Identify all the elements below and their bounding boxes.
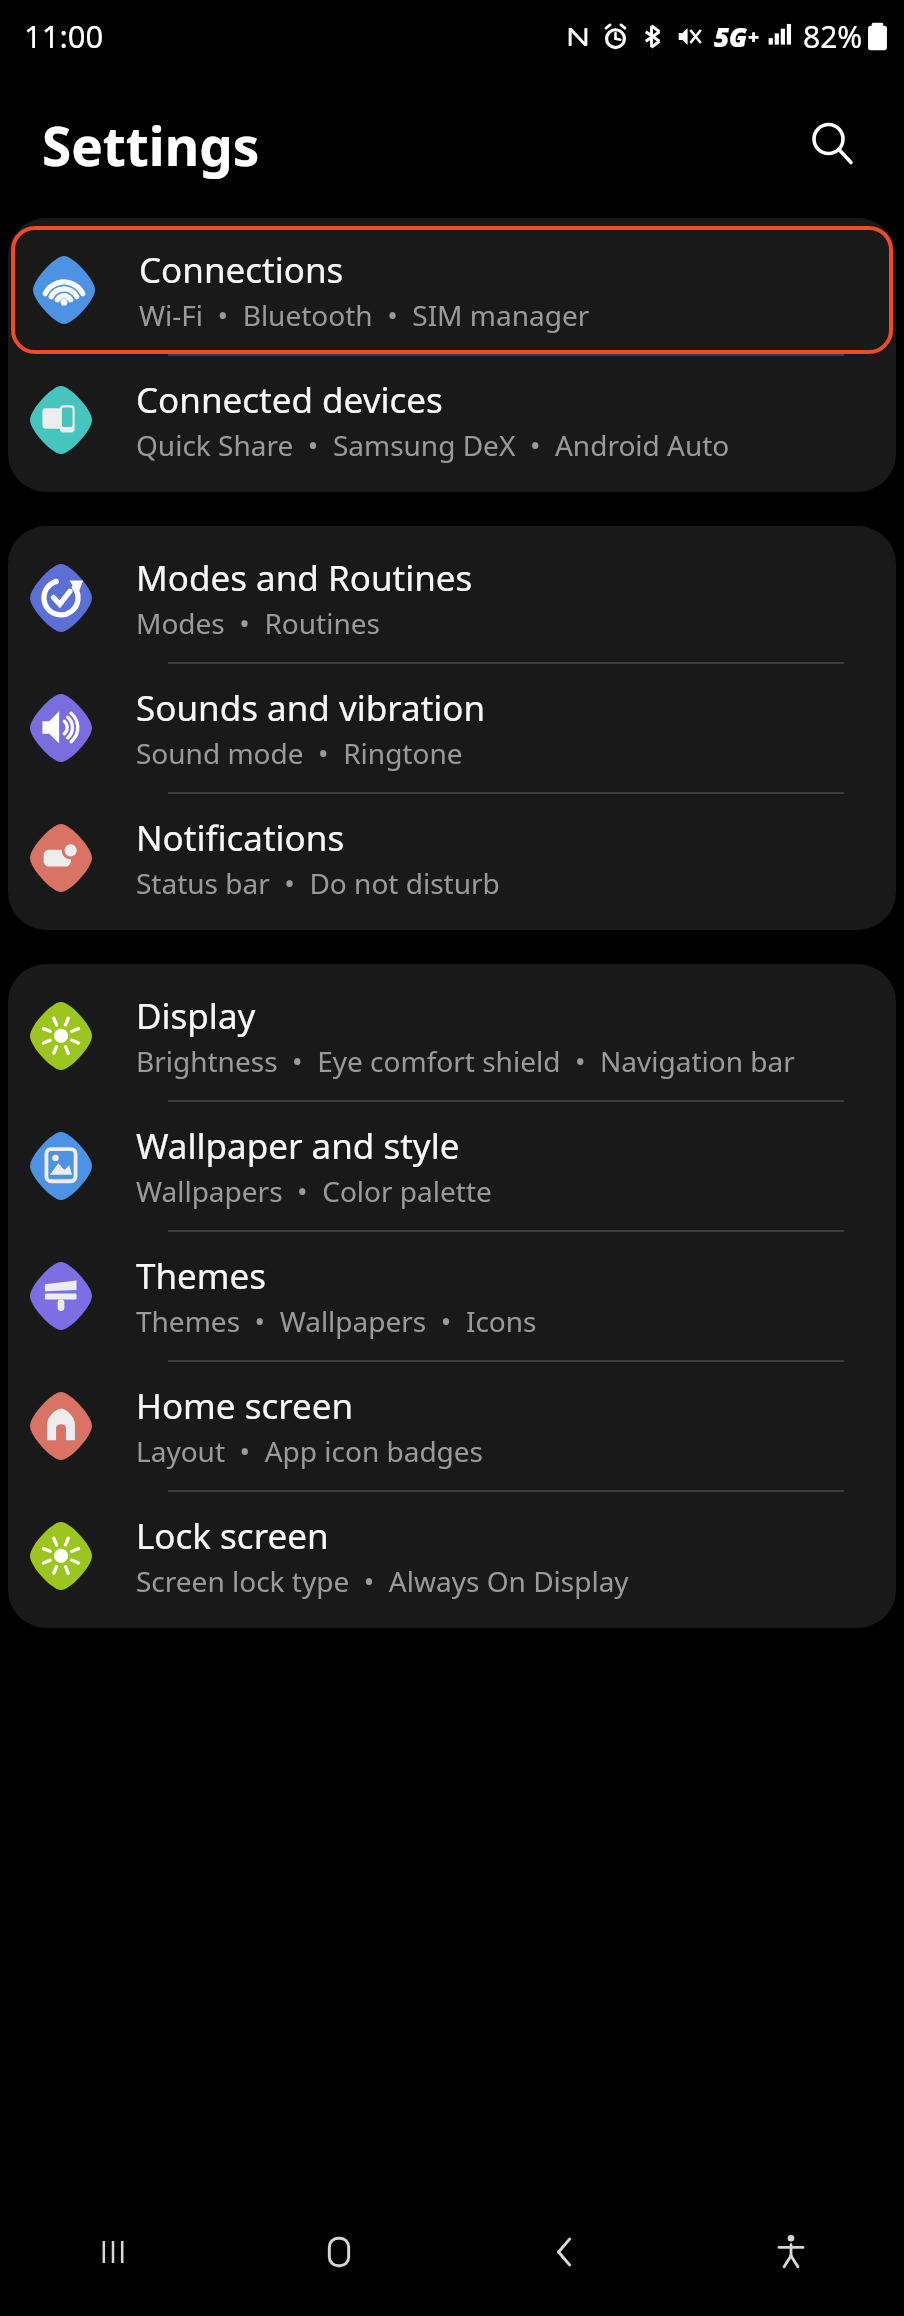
- staticText: Lock screen: [136, 1512, 329, 1560]
- staticText: Modes and Routines: [136, 554, 473, 602]
- staticText: Display: [136, 992, 256, 1040]
- staticText: Home screen: [136, 1382, 354, 1430]
- button[interactable]: Lock screen: [8, 1492, 896, 1620]
- staticText: Sounds and vibration: [136, 684, 486, 732]
- staticText: Notifications: [136, 814, 345, 862]
- staticText: 11:00: [24, 15, 104, 57]
- button[interactable]: Display: [8, 972, 896, 1100]
- staticText: 5G: [714, 19, 748, 54]
- button[interactable]: Sounds and vibration: [8, 664, 896, 792]
- button[interactable]: Connected devices: [8, 356, 896, 484]
- staticText: Wallpapers • Color palette: [136, 1172, 492, 1210]
- button[interactable]: Home: [226, 2188, 452, 2316]
- staticText: Wi-Fi • Bluetooth • SIM manager: [139, 296, 590, 334]
- button[interactable]: Notifications: [8, 794, 896, 922]
- button[interactable]: Accessibility: [678, 2188, 904, 2316]
- staticText: Screen lock type • Always On Display: [136, 1562, 629, 1600]
- staticText: Layout • App icon badges: [136, 1432, 484, 1470]
- staticText: 82%: [803, 16, 863, 57]
- staticText: Status bar • Do not disturb: [136, 864, 500, 902]
- button[interactable]: Home screen: [8, 1362, 896, 1490]
- staticText: Quick Share • Samsung DeX • Android Auto: [136, 426, 730, 464]
- staticText: Connected devices: [136, 376, 443, 424]
- button[interactable]: Recent apps: [0, 2188, 226, 2316]
- staticText: Connections: [139, 246, 344, 294]
- staticText: Settings: [42, 109, 260, 181]
- staticText: Modes • Routines: [136, 604, 380, 642]
- button[interactable]: Search: [792, 105, 872, 185]
- button[interactable]: Wallpaper and style: [8, 1102, 896, 1230]
- button[interactable]: Modes and Routines: [8, 534, 896, 662]
- button[interactable]: Themes: [8, 1232, 896, 1360]
- staticText: Sound mode • Ringtone: [136, 734, 463, 772]
- button[interactable]: Connections: [11, 226, 893, 354]
- staticText: Themes: [136, 1252, 267, 1300]
- staticText: +: [748, 24, 760, 50]
- staticText: Themes • Wallpapers • Icons: [136, 1302, 537, 1340]
- staticText: Brightness • Eye comfort shield • Naviga…: [136, 1042, 795, 1080]
- staticText: Wallpaper and style: [136, 1122, 460, 1170]
- button[interactable]: Back: [452, 2188, 678, 2316]
